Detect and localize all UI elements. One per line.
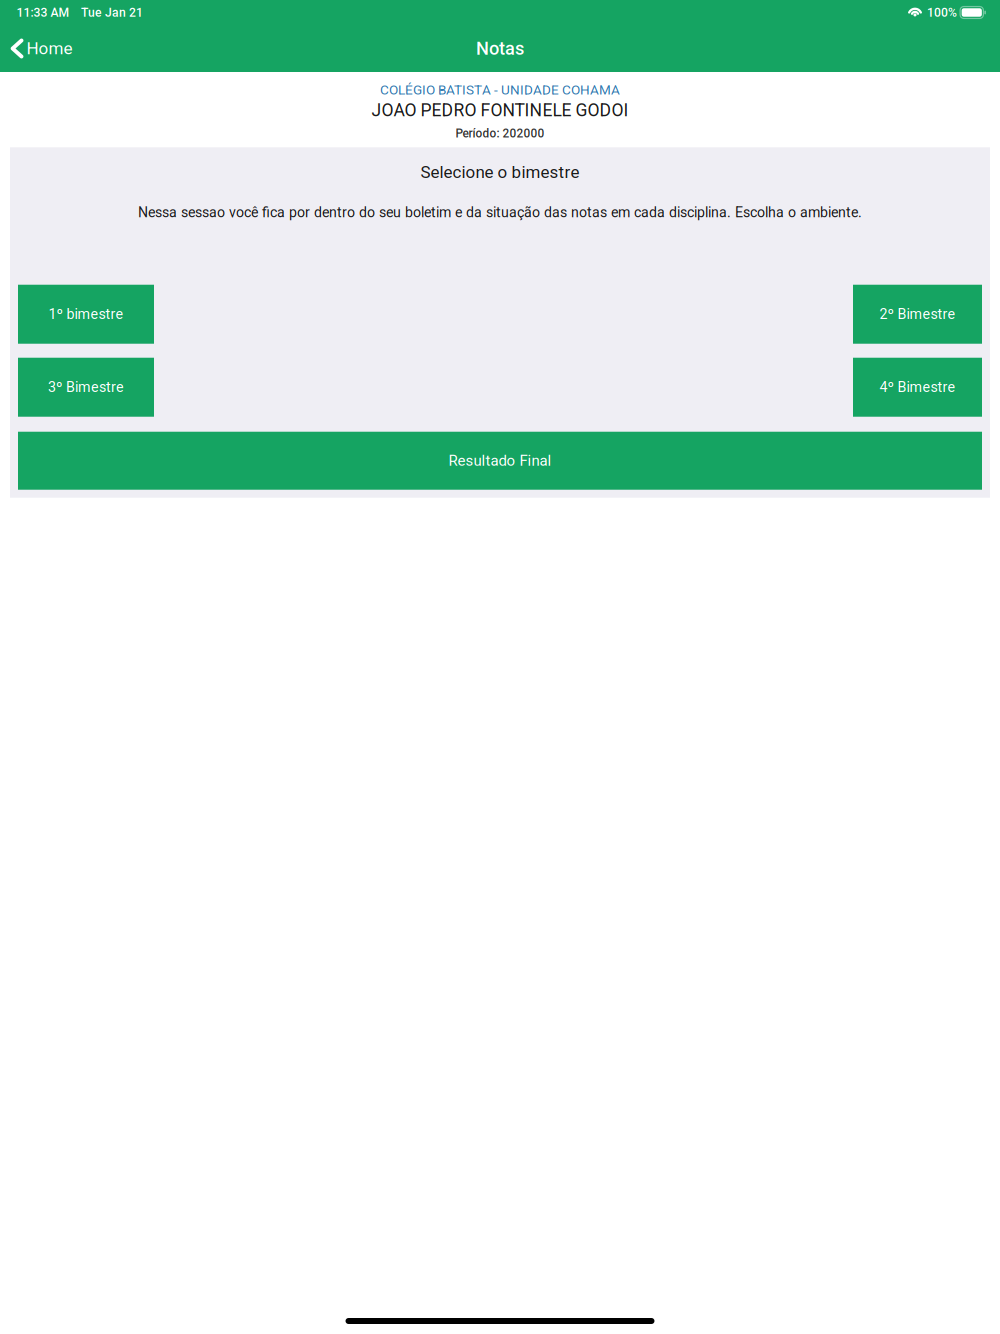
staticText: JOAO PEDRO FONTINELE GODOI: [371, 100, 628, 120]
staticText: COLÉGIO BATISTA - UNIDADE COHAMA: [380, 82, 620, 98]
staticText: Notas: [476, 38, 524, 59]
staticText: 4º Bimestre: [879, 379, 955, 396]
button[interactable]: 3º Bimestre: [18, 358, 154, 417]
staticText: 3º Bimestre: [48, 379, 124, 396]
staticText: 100%: [927, 5, 957, 20]
staticText: Selecione o bimestre: [420, 162, 579, 182]
staticText: Home: [26, 38, 72, 58]
button[interactable]: 1º bimestre: [18, 285, 154, 344]
staticText: Resultado Final: [448, 452, 551, 469]
staticText: Tue Jan 21: [81, 5, 143, 20]
staticText: 2º Bimestre: [879, 306, 955, 323]
button[interactable]: Resultado Final: [18, 432, 982, 490]
button[interactable]: Home: [0, 25, 82, 72]
staticText: Nessa sessao você fica por dentro do seu…: [138, 204, 862, 221]
staticText: 11:33 AM: [16, 5, 69, 20]
button[interactable]: 4º Bimestre: [853, 358, 982, 417]
staticText: 1º bimestre: [48, 306, 123, 323]
staticText: Período: 202000: [455, 126, 544, 140]
button[interactable]: 2º Bimestre: [853, 285, 982, 344]
